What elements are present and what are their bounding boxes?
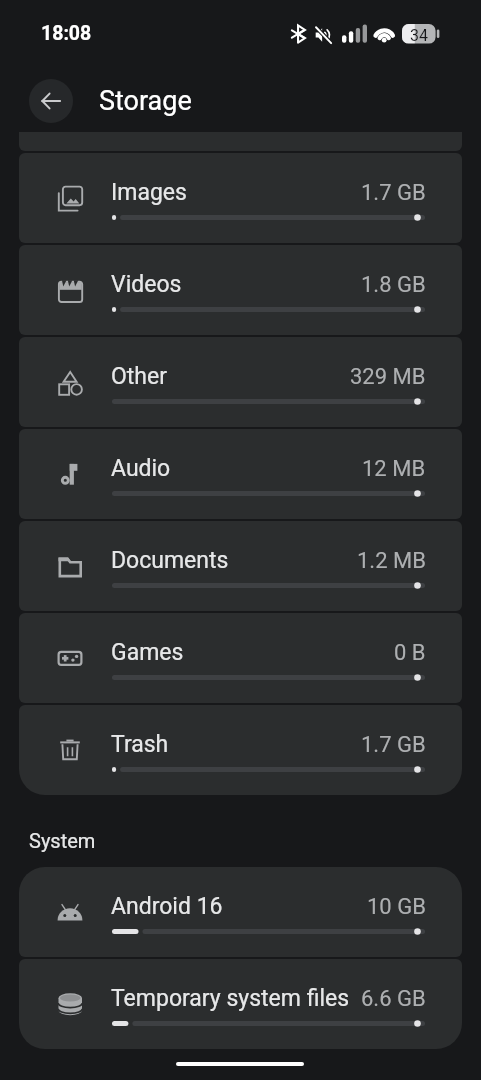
- staticText: 6.6 GB: [361, 986, 426, 1012]
- staticText: 1.2 MB: [357, 548, 426, 574]
- staticText: Audio: [111, 455, 171, 482]
- staticText: 329 MB: [350, 364, 426, 390]
- staticText: System: [29, 829, 96, 852]
- button[interactable]: Back: [29, 79, 73, 123]
- staticText: 1.7 GB: [361, 732, 426, 758]
- button[interactable]: Documents: [19, 521, 462, 611]
- button[interactable]: Android 16: [19, 867, 462, 957]
- button[interactable]: Images: [19, 153, 462, 243]
- staticText: 1.7 GB: [361, 180, 426, 206]
- button[interactable]: Temporary system files: [19, 959, 462, 1049]
- button[interactable]: Videos: [19, 245, 462, 335]
- button[interactable]: Trash: [19, 705, 462, 795]
- button[interactable]: Other: [19, 337, 462, 427]
- staticText: Games: [111, 639, 184, 666]
- staticText: Images: [111, 179, 187, 206]
- staticText: Temporary system files: [111, 985, 350, 1012]
- staticText: 18:08: [41, 22, 92, 45]
- staticText: Documents: [111, 547, 229, 574]
- staticText: Storage: [99, 85, 192, 117]
- button[interactable]: Audio: [19, 429, 462, 519]
- staticText: Android 16: [111, 893, 223, 920]
- staticText: Other: [111, 363, 168, 390]
- staticText: 0 B: [394, 640, 426, 666]
- button[interactable]: Games: [19, 613, 462, 703]
- staticText: 12 MB: [362, 456, 426, 482]
- staticText: Trash: [111, 731, 169, 758]
- staticText: 1.8 GB: [361, 272, 426, 298]
- staticText: Videos: [111, 271, 182, 298]
- staticText: 10 GB: [367, 894, 426, 920]
- staticText: 34: [410, 26, 428, 45]
